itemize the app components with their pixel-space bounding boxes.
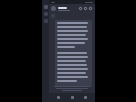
button[interactable]: Pin bbox=[83, 6, 88, 11]
button[interactable]: Home bbox=[54, 93, 63, 102]
button[interactable]: Search bbox=[68, 93, 77, 102]
button[interactable]: More bbox=[88, 6, 93, 11]
button[interactable]: Server bbox=[44, 19, 48, 23]
button[interactable]: Share bbox=[78, 6, 83, 11]
button[interactable]: Mention bbox=[55, 20, 92, 86]
button[interactable]: Profile bbox=[51, 6, 56, 11]
button[interactable]: Profile bbox=[81, 93, 90, 102]
button[interactable]: Server bbox=[44, 12, 48, 16]
button[interactable]: Direct messages bbox=[44, 5, 48, 9]
